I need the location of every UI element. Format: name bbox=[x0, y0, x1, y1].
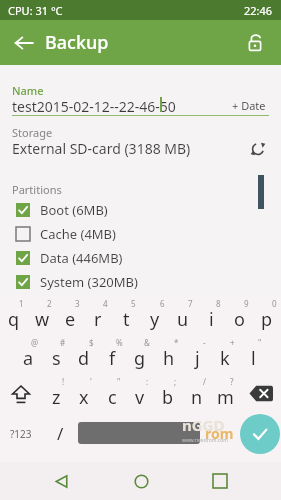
staticText: ? bbox=[230, 376, 234, 387]
staticText: / bbox=[57, 422, 64, 445]
button[interactable]: Boot (6MB) bbox=[0, 198, 281, 222]
staticText: g bbox=[134, 346, 146, 371]
staticText: Boot (6MB) bbox=[40, 201, 108, 219]
staticText: Cache (4MB) bbox=[40, 225, 116, 243]
button[interactable]: System (320MB) bbox=[0, 270, 281, 294]
button[interactable]: s bbox=[42, 336, 70, 373]
staticText: 6 bbox=[160, 298, 165, 309]
button[interactable]: Home bbox=[122, 462, 160, 500]
staticText: test2015-02-12--22-46-50 bbox=[12, 97, 176, 116]
button[interactable]: Space bbox=[78, 422, 200, 444]
button[interactable]: Back bbox=[42, 462, 80, 500]
staticText: @ bbox=[31, 337, 39, 348]
staticText: Partitions bbox=[12, 182, 62, 197]
staticText: y bbox=[150, 307, 160, 332]
staticText: r bbox=[94, 307, 102, 332]
staticText: u bbox=[177, 307, 189, 332]
button[interactable]: Confirm bbox=[240, 414, 280, 454]
staticText: l bbox=[251, 346, 256, 371]
button[interactable]: / bbox=[42, 415, 78, 452]
button[interactable]: i bbox=[197, 297, 225, 334]
button[interactable]: t bbox=[112, 297, 140, 334]
staticText: 2 bbox=[47, 298, 52, 309]
button[interactable]: d bbox=[70, 336, 98, 373]
staticText: / bbox=[203, 376, 206, 387]
staticText: CPU: 31 °C bbox=[8, 3, 63, 18]
button[interactable]: + Date bbox=[232, 98, 266, 113]
button[interactable]: Refresh bbox=[246, 137, 270, 161]
button[interactable]: b bbox=[154, 375, 182, 412]
staticText: 9 bbox=[244, 298, 249, 309]
staticText: : bbox=[146, 376, 149, 387]
staticText: n bbox=[191, 385, 203, 410]
staticText: 1 bbox=[19, 298, 24, 309]
staticText: d bbox=[78, 346, 90, 371]
staticText: System (320MB) bbox=[40, 273, 138, 291]
staticText: p bbox=[261, 307, 273, 332]
button[interactable]: o bbox=[225, 297, 253, 334]
staticText: ' bbox=[90, 376, 92, 387]
staticText: nGGD bbox=[182, 415, 225, 435]
button[interactable]: Android Secure (0MB) bbox=[0, 294, 281, 318]
staticText: i bbox=[209, 307, 214, 332]
button[interactable]: z bbox=[42, 375, 70, 412]
button[interactable]: v bbox=[126, 375, 154, 412]
button[interactable]: y bbox=[141, 297, 169, 334]
staticText: f bbox=[109, 346, 116, 371]
button[interactable]: ?123 bbox=[0, 415, 42, 452]
button[interactable]: c bbox=[98, 375, 126, 412]
staticText: Storage bbox=[12, 125, 53, 140]
staticText: Backup bbox=[45, 30, 109, 55]
staticText: rom bbox=[205, 424, 234, 443]
staticText: Android Secure (0MB) bbox=[40, 297, 173, 315]
staticText: 3 bbox=[75, 298, 80, 309]
staticText: z bbox=[52, 385, 61, 410]
button[interactable]: Data (446MB) bbox=[0, 246, 281, 270]
button[interactable]: Back bbox=[6, 25, 42, 61]
staticText: " bbox=[258, 337, 262, 348]
button[interactable]: q bbox=[0, 297, 28, 334]
staticText: 5 bbox=[131, 298, 136, 309]
button[interactable]: h bbox=[155, 336, 183, 373]
button[interactable]: Recents bbox=[201, 462, 239, 500]
button[interactable]: k bbox=[211, 336, 239, 373]
button[interactable]: a bbox=[14, 336, 42, 373]
button[interactable]: j bbox=[183, 336, 211, 373]
staticText: 8 bbox=[216, 298, 221, 309]
staticText: * bbox=[174, 337, 179, 348]
button[interactable]: n bbox=[183, 375, 211, 412]
staticText: m bbox=[217, 385, 234, 410]
staticText: s bbox=[52, 346, 61, 371]
staticText: h bbox=[163, 346, 175, 371]
staticText: t bbox=[123, 307, 130, 332]
button[interactable]: l bbox=[239, 336, 267, 373]
button[interactable]: e bbox=[56, 297, 84, 334]
staticText: 4 bbox=[103, 298, 108, 309]
button[interactable]: x bbox=[70, 375, 98, 412]
button[interactable]: r bbox=[84, 297, 112, 334]
staticText: + bbox=[230, 337, 235, 348]
staticText: x bbox=[79, 385, 89, 410]
staticText: e bbox=[65, 307, 76, 332]
button[interactable]: Unlocked bbox=[237, 25, 273, 61]
staticText: c bbox=[108, 385, 117, 410]
button[interactable]: g bbox=[126, 336, 154, 373]
button[interactable]: u bbox=[169, 297, 197, 334]
staticText: k bbox=[220, 346, 230, 371]
button[interactable]: Cache (4MB) bbox=[0, 222, 281, 246]
button[interactable]: f bbox=[98, 336, 126, 373]
staticText: ! bbox=[62, 376, 65, 387]
staticText: www.needrom.com bbox=[182, 437, 228, 444]
button[interactable]: m bbox=[211, 375, 239, 412]
button[interactable]: w bbox=[28, 297, 56, 334]
staticText: b bbox=[162, 385, 174, 410]
staticText: - bbox=[203, 337, 206, 348]
button[interactable]: Backspace bbox=[240, 375, 281, 412]
staticText: " bbox=[117, 376, 121, 387]
staticText: a bbox=[23, 346, 34, 371]
staticText: w bbox=[35, 307, 50, 332]
staticText: # bbox=[60, 337, 66, 348]
button[interactable]: p bbox=[253, 297, 281, 334]
staticText: q bbox=[8, 307, 20, 332]
button[interactable]: Shift bbox=[0, 375, 42, 412]
